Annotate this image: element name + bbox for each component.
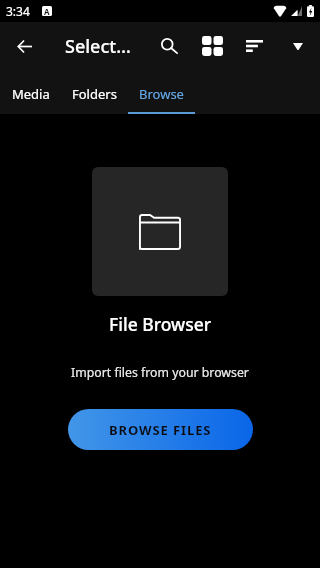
staticText: Media [12, 85, 50, 103]
staticText: File Browser [109, 312, 212, 334]
button[interactable]: Media [1, 70, 61, 114]
staticText: 3:34 [6, 3, 30, 19]
button[interactable]: Back [0, 22, 48, 70]
staticText: BROWSE FILES [109, 421, 212, 439]
button[interactable]: Grid view [192, 22, 233, 70]
button[interactable]: Browse [128, 70, 195, 114]
button[interactable]: Sort [233, 22, 276, 70]
button[interactable]: BROWSE FILES [68, 409, 253, 450]
staticText: Folders [72, 85, 117, 103]
button[interactable]: Search [146, 22, 192, 70]
staticText: Select… [65, 34, 131, 59]
staticText: A [44, 6, 50, 16]
button[interactable]: Folders [61, 70, 128, 114]
staticText: Browse [139, 85, 184, 103]
button[interactable]: More options [276, 22, 320, 70]
staticText: Import files from your browser [71, 364, 249, 381]
